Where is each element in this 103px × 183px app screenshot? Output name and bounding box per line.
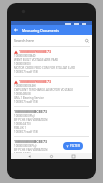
staticText: 1000000000(4H) [14, 84, 37, 88]
staticText: Search here [14, 38, 34, 43]
staticText: Measuring Documents [22, 28, 59, 33]
staticText: FIBLUK 1 [14, 126, 27, 130]
staticText: CWFLIENT TERCHARGE-AI MOTOR VOLTAGE [14, 88, 73, 92]
staticText: 1000(07) wolf (18) [14, 100, 38, 104]
button[interactable]: Recent apps [70, 153, 77, 159]
button[interactable]: Search here [14, 35, 89, 46]
button[interactable]: 1080008000BCBE73 [11, 137, 92, 153]
button[interactable]: FILTER [63, 142, 83, 150]
staticText: 1080008000BCBE73 [14, 109, 47, 114]
staticText: 1000000000(Pkj) [14, 144, 37, 148]
staticText: GM+1 Bearing Service [14, 96, 44, 100]
button[interactable]: 1080008000BCBE73 [11, 107, 92, 137]
staticText: 1000800090008E73 [19, 79, 51, 84]
staticText: MOTOR OXIDE FEED COM FOR STILLIAT E+RD [14, 66, 76, 70]
staticText: 1000048508 [14, 92, 31, 96]
staticText: BF PCHS FAN VIBRATION [14, 118, 48, 122]
staticText: 1080008000BCBE73 [14, 139, 47, 144]
staticText: 100000000(Pkj) [14, 114, 35, 118]
button[interactable]: 1000800090008E73 [11, 77, 92, 107]
staticText: WENT BUILT VOITAGE AIRS PARE [14, 58, 59, 62]
staticText: 1000044(70) [14, 122, 31, 126]
button[interactable]: Back [11, 25, 20, 35]
button[interactable]: Back [26, 153, 33, 159]
staticText: 1000000(00) [14, 62, 31, 66]
staticText: 1000800090008E73 [19, 49, 51, 54]
button[interactable]: Home [48, 153, 55, 159]
button[interactable]: 1000800090008E73 [11, 47, 92, 77]
staticText: 1000(07) wolf (18) [14, 130, 38, 134]
staticText: FILTER [70, 144, 80, 148]
staticText: 1000044(70) [14, 152, 31, 153]
staticText: BF PCHS FAN VIBRATION [14, 148, 48, 152]
staticText: 1000000000840 [14, 54, 36, 58]
staticText: 1000(07) wolf (18) [14, 70, 38, 74]
